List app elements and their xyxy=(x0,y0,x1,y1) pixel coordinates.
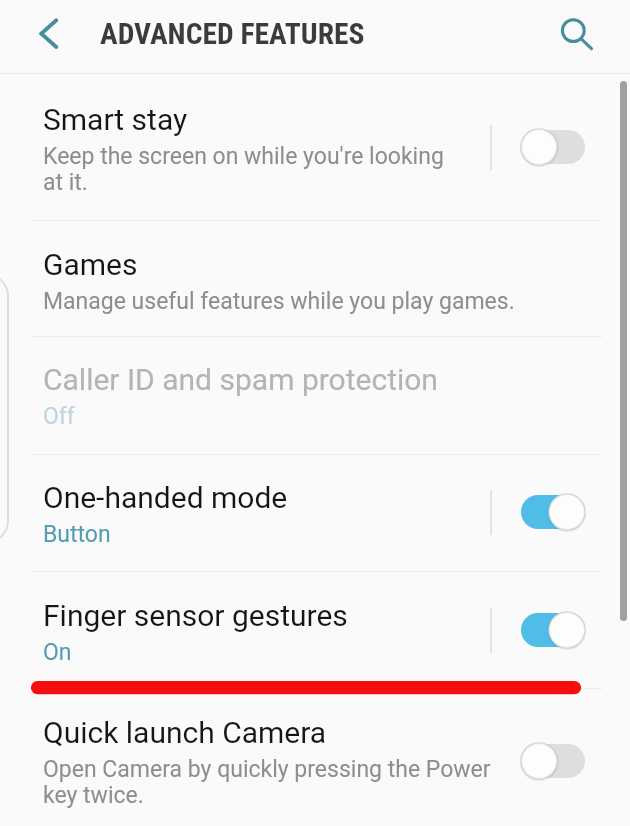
staticText: On xyxy=(43,639,72,666)
staticText: Off xyxy=(43,403,75,430)
button[interactable]: Search xyxy=(546,3,602,59)
staticText: ADVANCED FEATURES xyxy=(100,17,365,52)
button[interactable]: Finger sensor gestures xyxy=(521,609,585,651)
button[interactable]: One-handed mode xyxy=(521,491,585,533)
button[interactable]: Caller ID and spam protection xyxy=(0,336,630,454)
button[interactable]: Smart stay xyxy=(0,74,630,220)
staticText: One-handed mode xyxy=(43,480,288,515)
button[interactable]: Finger sensor gestures xyxy=(0,571,630,688)
staticText: Keep the screen on while you're looking … xyxy=(43,143,444,195)
staticText: Games xyxy=(43,247,138,282)
staticText: Quick launch Camera xyxy=(43,715,327,750)
staticText: Button xyxy=(43,521,111,548)
button[interactable]: Quick launch Camera xyxy=(521,740,585,782)
staticText: Manage useful features while you play ga… xyxy=(43,288,515,315)
button[interactable]: Smart stay xyxy=(521,126,585,168)
staticText: Smart stay xyxy=(43,102,188,137)
button[interactable]: Quick launch Camera xyxy=(0,688,630,826)
staticText: Open Camera by quickly pressing the Powe… xyxy=(43,756,491,808)
button[interactable]: Games xyxy=(0,220,630,336)
staticText: Caller ID and spam protection xyxy=(43,362,438,397)
button[interactable]: One-handed mode xyxy=(0,454,630,571)
staticText: Finger sensor gestures xyxy=(43,598,348,633)
button[interactable]: Back xyxy=(21,6,77,62)
